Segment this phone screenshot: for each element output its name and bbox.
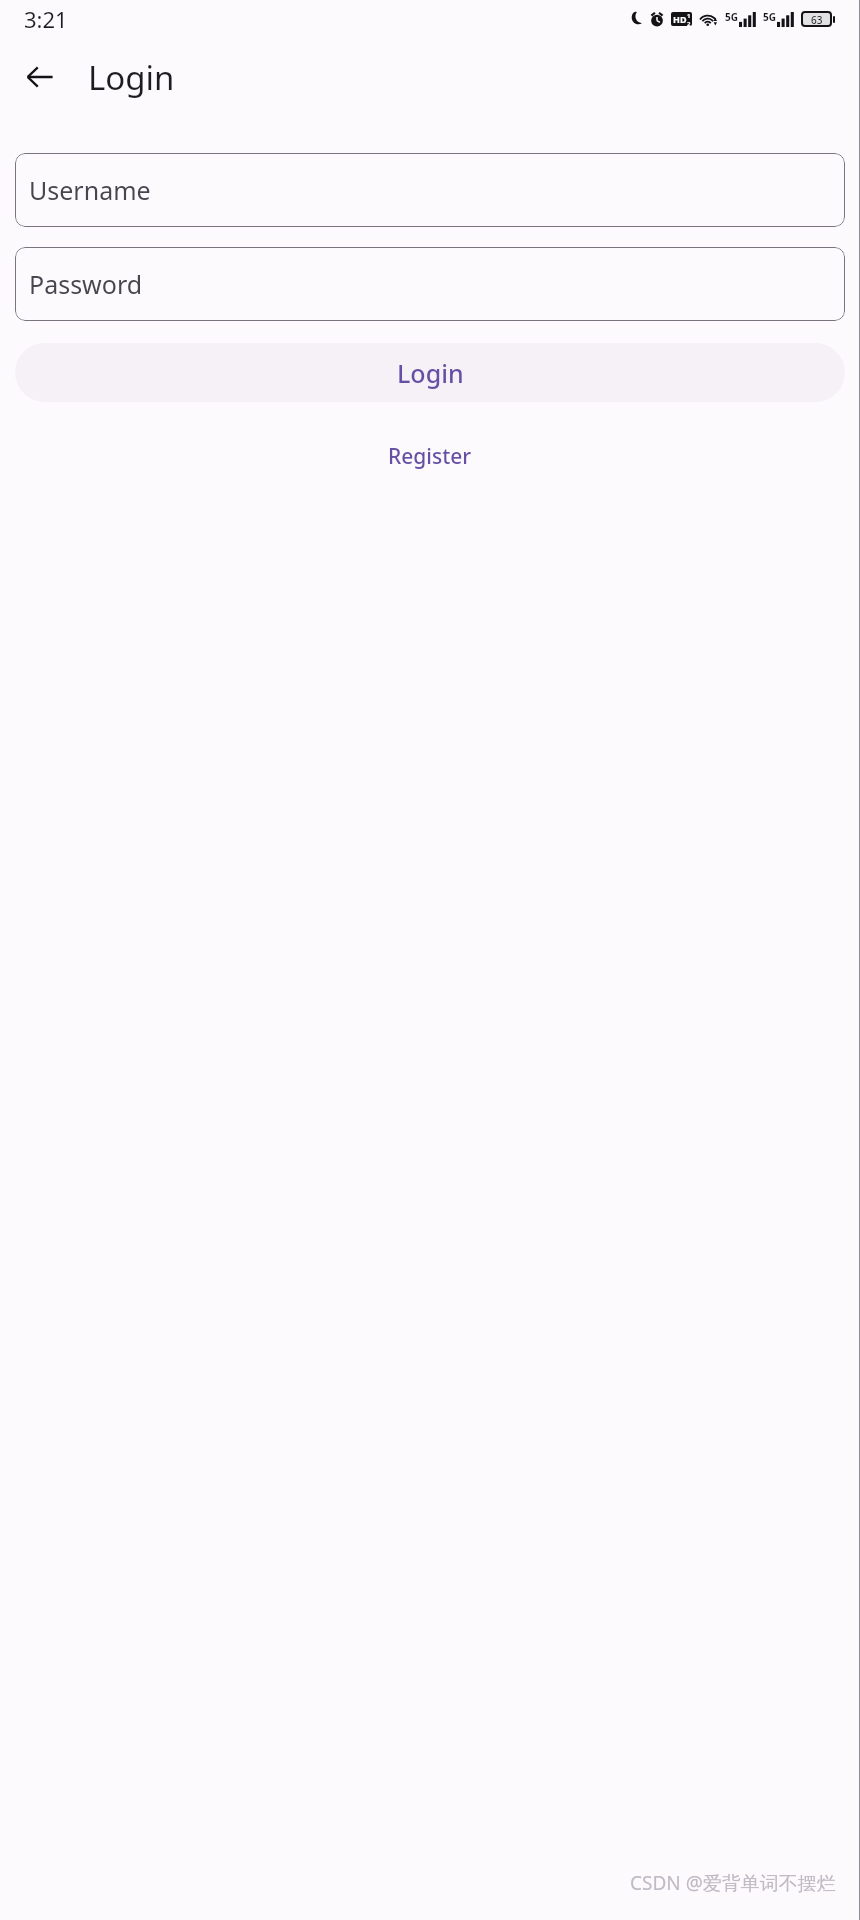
staticText: CSDN @爱背单词不摆烂 [630, 1870, 836, 1896]
staticText: 5G [763, 10, 776, 24]
staticText: HD [673, 13, 687, 25]
staticText: Register [388, 442, 472, 471]
staticText: 63 [811, 13, 823, 25]
staticText: Login [397, 356, 464, 390]
staticText: Password [29, 267, 143, 301]
staticText: 5G [725, 10, 738, 24]
button[interactable]: Username [15, 153, 845, 227]
staticText: 1 [687, 12, 691, 20]
button[interactable]: Back [12, 49, 68, 105]
staticText: Username [29, 173, 151, 207]
staticText: Login [88, 55, 175, 100]
staticText: 2 [687, 20, 691, 26]
staticText: 3:21 [24, 4, 68, 34]
button[interactable]: Password [15, 247, 845, 321]
button[interactable]: Register [370, 434, 490, 479]
button[interactable]: Login [15, 343, 845, 402]
